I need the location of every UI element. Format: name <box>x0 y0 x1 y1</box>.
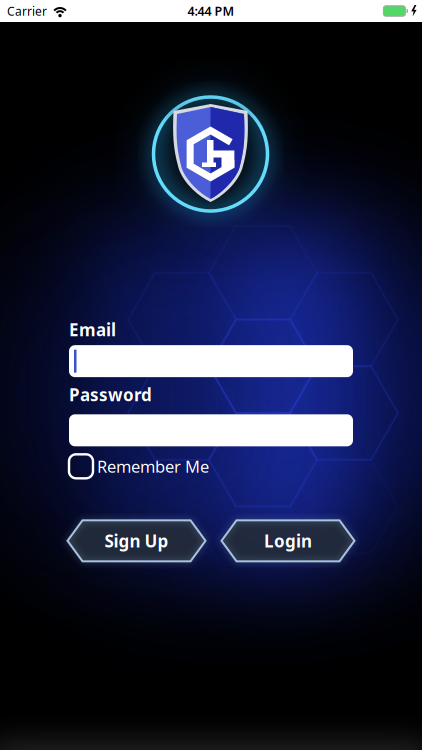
button[interactable]: Remember Me <box>69 454 353 478</box>
staticText: Remember Me <box>97 455 209 478</box>
button[interactable]: Sign Up <box>66 519 206 562</box>
staticText: Email <box>69 318 116 341</box>
button[interactable]: Login <box>220 519 355 562</box>
staticText: 4:44 PM <box>187 2 234 19</box>
staticText: Login <box>264 529 312 552</box>
staticText: Sign Up <box>104 529 168 552</box>
staticText: Password <box>69 383 152 406</box>
button[interactable]: Email <box>69 345 353 377</box>
button[interactable]: Password <box>69 414 353 446</box>
staticText: Carrier <box>7 3 47 19</box>
